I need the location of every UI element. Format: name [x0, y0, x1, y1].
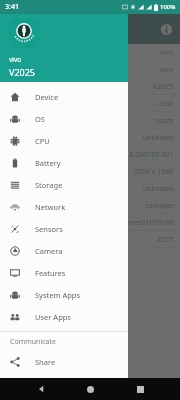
button[interactable]: Battery: [0, 152, 128, 174]
button[interactable]: atoll: [0, 95, 180, 112]
staticText: Features: [35, 268, 66, 278]
button[interactable]: System Apps: [0, 284, 128, 306]
staticText: 2025: [157, 235, 174, 245]
staticText: omer01078160: [124, 218, 174, 228]
button[interactable]: Info: [157, 20, 175, 38]
staticText: 3:41: [5, 2, 19, 12]
button[interactable]: OS: [0, 108, 128, 130]
staticText: Battery: [35, 158, 61, 168]
staticText: Network: [35, 202, 66, 212]
staticText: Camera: [35, 246, 63, 256]
staticText: OS: [35, 114, 45, 124]
staticText: Sensors: [35, 224, 63, 234]
button[interactable]: 2025: [0, 231, 180, 248]
button[interactable]: unknown: [0, 129, 180, 146]
staticText: 1A.200709.001: [125, 150, 174, 160]
staticText: V2025: [153, 82, 174, 92]
staticText: unknown: [143, 184, 174, 194]
button[interactable]: Home: [81, 380, 99, 398]
staticText: Device: [35, 92, 59, 102]
staticText: Communicate: [10, 337, 56, 347]
button[interactable]: unknown: [0, 180, 180, 197]
button[interactable]: Network: [0, 196, 128, 218]
button[interactable]: 2208 x 1080: [0, 163, 180, 180]
button[interactable]: User Apps: [0, 306, 128, 328]
button[interactable]: Storage: [0, 174, 128, 196]
button[interactable]: Device: [0, 86, 128, 108]
staticText: Storage: [35, 180, 63, 190]
staticText: vivo: [160, 48, 174, 58]
button[interactable]: Features: [0, 262, 128, 284]
button[interactable]: V2025: [0, 78, 180, 95]
staticText: CPU: [35, 136, 50, 146]
button[interactable]: Share: [0, 351, 128, 373]
staticText: unknown: [143, 133, 174, 143]
button[interactable]: 1A.200709.001: [0, 146, 180, 163]
staticText: atoll: [159, 99, 174, 109]
button[interactable]: Sensors: [0, 218, 128, 240]
staticText: User Apps: [35, 312, 71, 322]
staticText: compiler: [145, 201, 174, 211]
button[interactable]: Camera: [0, 240, 128, 262]
button[interactable]: compiler: [0, 197, 180, 214]
staticText: Share: [35, 357, 56, 367]
button[interactable]: qcom: [0, 112, 180, 129]
staticText: 2208 x 1080: [134, 167, 174, 177]
staticText: vivo: [160, 65, 174, 75]
button[interactable]: CPU: [0, 130, 128, 152]
staticText: qcom: [155, 116, 174, 126]
button[interactable]: Back: [32, 380, 50, 398]
staticText: V2025: [9, 66, 35, 78]
staticText: 100%: [160, 3, 176, 11]
button[interactable]: vivo: [0, 44, 180, 61]
staticText: System Apps: [35, 290, 81, 300]
button[interactable]: vivo: [0, 61, 180, 78]
staticText: vivo: [9, 55, 22, 64]
button[interactable]: Recents: [131, 380, 149, 398]
button[interactable]: omer01078160: [0, 214, 180, 231]
